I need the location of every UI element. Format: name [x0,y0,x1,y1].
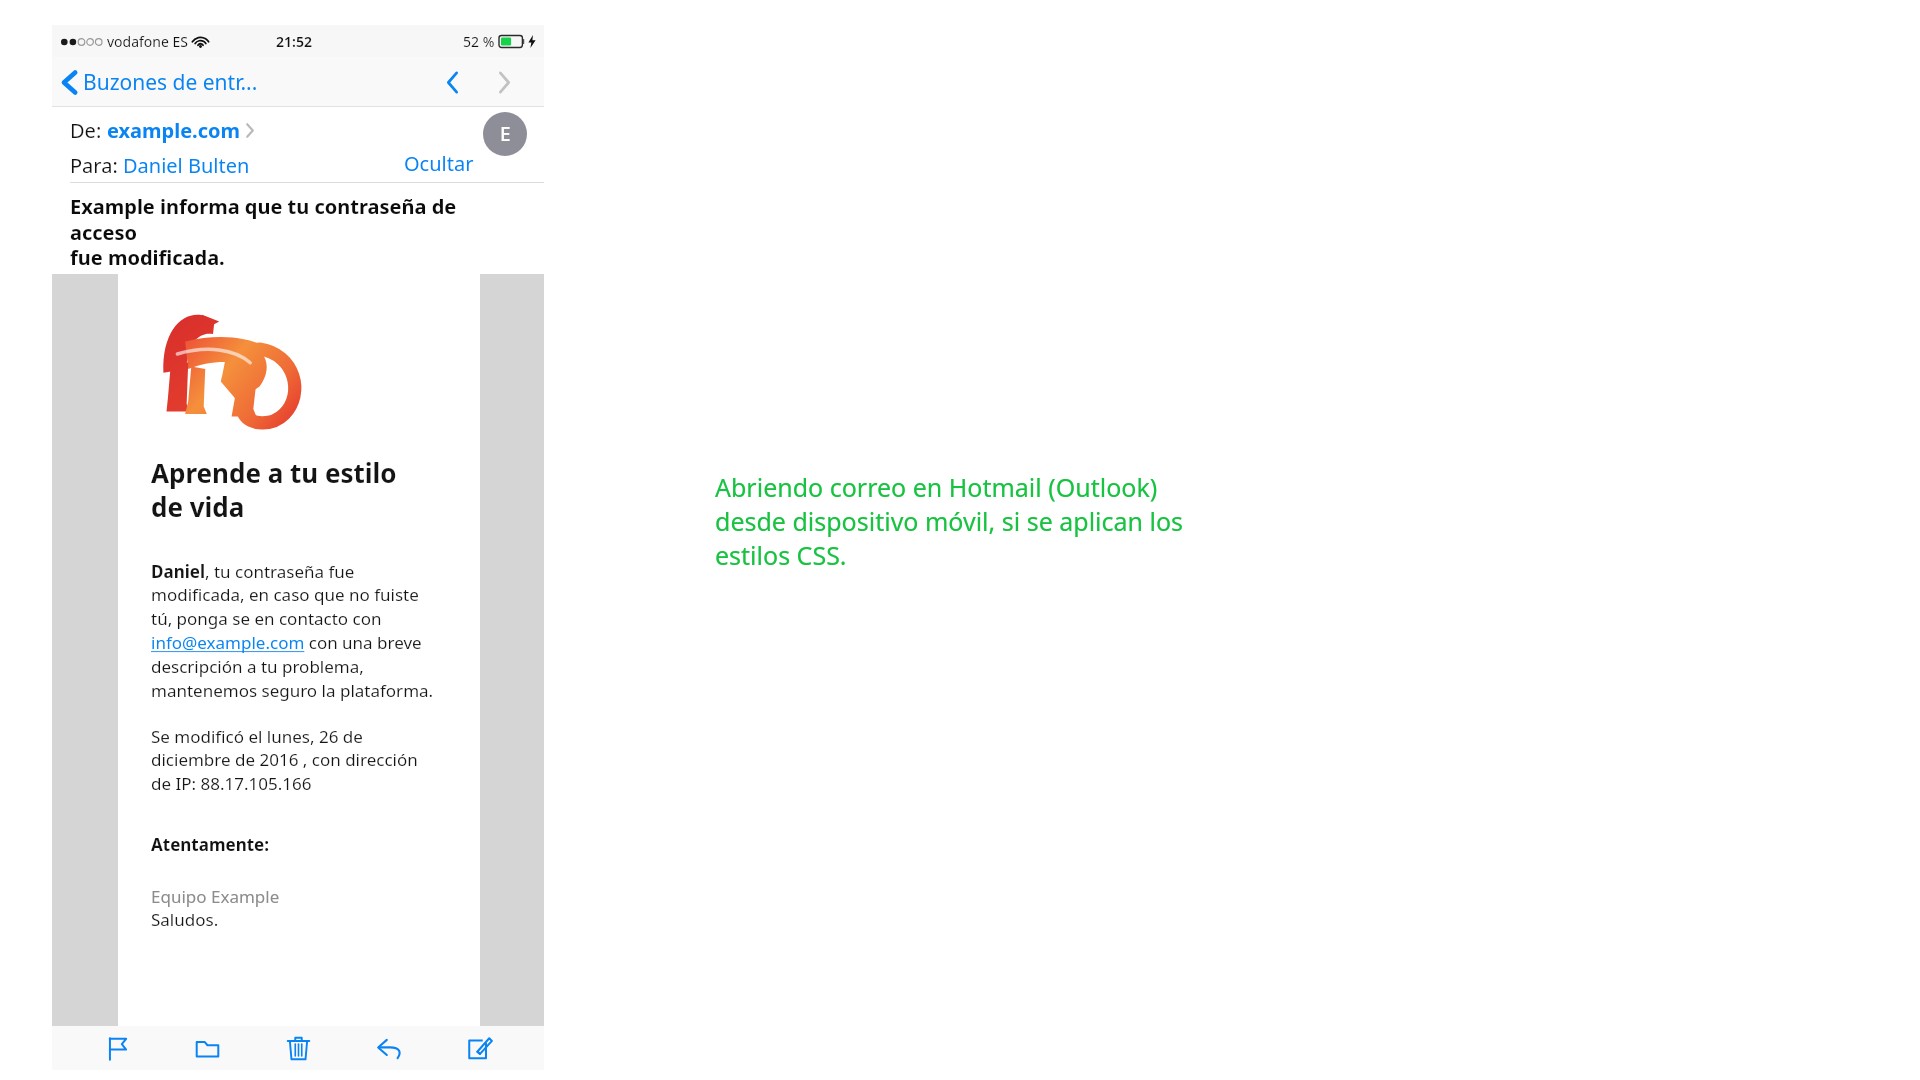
staticText: example.com [107,117,241,144]
button[interactable]: Mensaje anterior [434,64,470,100]
staticText: Saludos. [151,908,219,931]
button[interactable]: Redactar [447,1026,511,1070]
staticText: desde dispositivo móvil, si se aplican l… [715,504,1184,538]
button[interactable]: example.com [107,117,241,144]
button[interactable]: Mensaje siguiente [486,64,522,100]
staticText: De: [70,117,107,144]
button[interactable]: Marcar [85,1026,149,1070]
staticText: Buzones de entr... [83,68,258,97]
staticText: Ocultar [404,150,474,177]
staticText: 52 % [463,32,495,51]
staticText: Abriendo correo en Hotmail (Outlook) [715,470,1158,504]
button[interactable]: Eliminar [266,1026,330,1070]
staticText: Atentamente: [151,833,269,856]
staticText: Aprende a tu estilo de vida [151,455,397,524]
staticText: 21:52 [276,32,312,51]
staticText: vodafone ES [107,32,188,51]
button[interactable]: Daniel Bulten [123,152,250,179]
staticText: E [500,121,511,147]
button[interactable]: E [483,112,527,156]
button[interactable]: Buzones de entr... [52,64,266,101]
staticText: Se modificó el lunes, 26 de diciembre de… [151,725,418,795]
staticText: Example informa que tu contraseña de acc… [70,193,526,270]
staticText: estilos CSS. [715,538,847,572]
staticText: Daniel, tu contraseña fue modificada, en… [151,560,434,702]
staticText: Equipo Example [151,885,280,908]
button[interactable]: Ocultar [404,150,474,177]
button[interactable]: Responder [357,1026,421,1070]
staticText: Daniel Bulten [123,152,250,179]
staticText: Para: [70,152,123,179]
button[interactable]: Mover a carpeta [175,1026,239,1070]
